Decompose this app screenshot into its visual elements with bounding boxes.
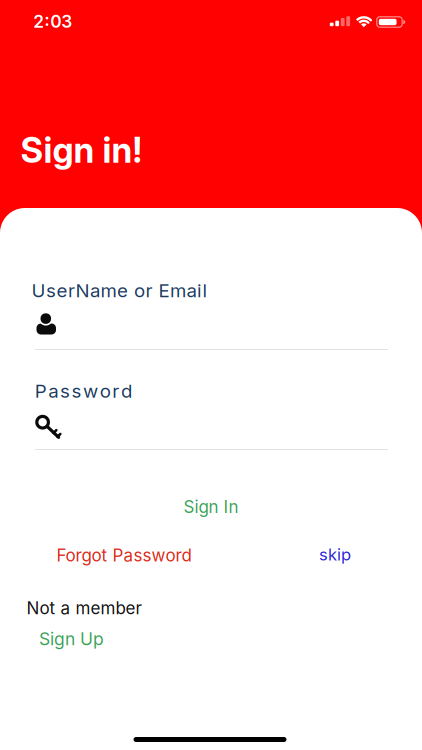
- button[interactable]: skip: [319, 544, 351, 564]
- button[interactable]: Forgot Password: [56, 545, 191, 566]
- staticText: Not a member: [26, 598, 141, 618]
- button[interactable]: Sign Up: [39, 628, 104, 649]
- staticText: skip: [319, 544, 351, 564]
- staticText: Forgot Password: [56, 545, 191, 566]
- staticText: Sign in!: [21, 129, 143, 171]
- staticText: Sign In: [183, 497, 238, 517]
- button[interactable]: Sign In: [183, 497, 238, 517]
- staticText: UserName or Email: [31, 279, 207, 302]
- staticText: Sign Up: [39, 628, 104, 649]
- staticText: Password: [35, 380, 132, 402]
- staticText: 2:03: [33, 11, 72, 32]
